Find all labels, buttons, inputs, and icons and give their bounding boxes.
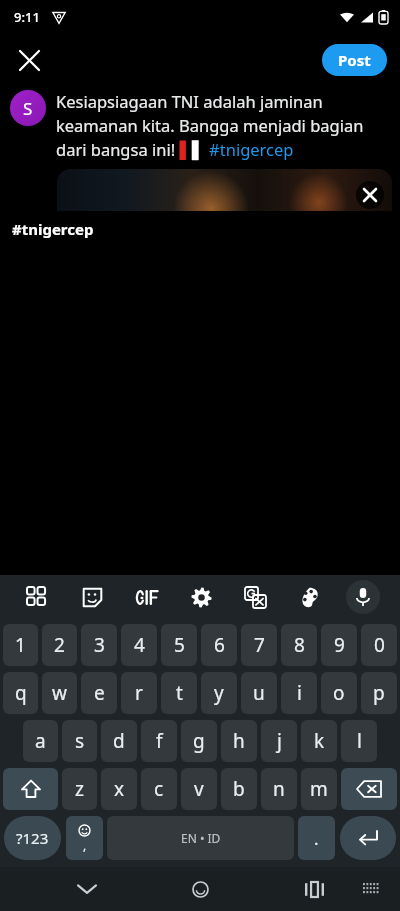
button[interactable]: Stickers xyxy=(65,579,120,615)
button[interactable]: Remove media xyxy=(356,181,384,209)
button[interactable]: Profile xyxy=(10,90,46,126)
button[interactable] xyxy=(57,169,392,211)
staticText: Post xyxy=(338,50,371,70)
staticText: m xyxy=(310,776,328,802)
button[interactable]: Shift xyxy=(3,768,58,810)
button[interactable]: Symbols xyxy=(10,579,65,615)
staticText: 7 xyxy=(254,632,265,658)
staticText: f xyxy=(156,728,163,754)
button[interactable]: o xyxy=(321,672,357,714)
button[interactable]: 6 xyxy=(201,624,237,666)
staticText: #tnigercep xyxy=(12,219,94,239)
button[interactable]: d xyxy=(101,720,137,762)
button[interactable]: w xyxy=(42,672,77,714)
button[interactable]: Home xyxy=(172,867,229,911)
button[interactable]: z xyxy=(62,768,97,810)
staticText: w xyxy=(52,680,67,706)
button[interactable]: 1 xyxy=(3,624,38,666)
button[interactable]: l xyxy=(341,720,377,762)
staticText: k xyxy=(314,728,325,754)
button[interactable]: 2 xyxy=(42,624,77,666)
button[interactable]: b xyxy=(221,768,257,810)
staticText: a xyxy=(35,728,46,754)
staticText: S xyxy=(23,97,33,120)
staticText: EN • ID xyxy=(181,830,221,846)
button[interactable]: Hide keyboard xyxy=(58,867,115,911)
staticText: y xyxy=(214,680,224,706)
button[interactable]: Emoji xyxy=(66,816,103,860)
staticText: x xyxy=(114,776,125,802)
button[interactable]: Post xyxy=(322,44,387,76)
button[interactable]: a xyxy=(23,720,58,762)
staticText: q xyxy=(15,680,27,706)
button[interactable]: v xyxy=(181,768,217,810)
button[interactable]: 9 xyxy=(321,624,357,666)
staticText: p xyxy=(373,680,385,706)
staticText: 1 xyxy=(15,632,26,658)
staticText: u xyxy=(253,680,265,706)
button[interactable]: 7 xyxy=(241,624,277,666)
staticText: 5 xyxy=(174,632,185,658)
staticText: 0 xyxy=(374,632,385,658)
staticText: 4 xyxy=(134,632,145,658)
button[interactable]: s xyxy=(62,720,97,762)
button[interactable]: q xyxy=(3,672,38,714)
staticText: . xyxy=(314,827,319,850)
staticText: s xyxy=(75,728,85,754)
staticText: d xyxy=(113,728,125,754)
button[interactable]: r xyxy=(121,672,157,714)
button[interactable]: t xyxy=(161,672,197,714)
button[interactable]: Space xyxy=(107,816,294,860)
button[interactable]: h xyxy=(221,720,257,762)
button[interactable]: 0 xyxy=(361,624,397,666)
staticText: 8 xyxy=(294,632,305,658)
staticText: 2 xyxy=(54,632,65,658)
button[interactable]: f xyxy=(141,720,177,762)
button[interactable]: Recents xyxy=(286,867,343,911)
button[interactable]: x xyxy=(101,768,137,810)
button[interactable]: . xyxy=(298,816,335,860)
staticText: Kesiapsiagaan TNI adalah jaminan keamana… xyxy=(56,90,388,161)
staticText: j xyxy=(277,728,282,754)
staticText: 3 xyxy=(94,632,105,658)
button[interactable]: 3 xyxy=(81,624,117,666)
button[interactable]: m xyxy=(301,768,337,810)
staticText: ?123 xyxy=(16,828,49,848)
button[interactable]: e xyxy=(81,672,117,714)
staticText: r xyxy=(135,680,143,706)
staticText: 6 xyxy=(214,632,225,658)
button[interactable]: y xyxy=(201,672,237,714)
button[interactable]: 4 xyxy=(121,624,157,666)
button[interactable]: p xyxy=(361,672,397,714)
button[interactable]: Close xyxy=(8,39,50,81)
button[interactable]: Voice input xyxy=(346,580,380,614)
button[interactable]: Settings xyxy=(174,579,228,615)
button[interactable]: c xyxy=(141,768,177,810)
button[interactable]: 5 xyxy=(161,624,197,666)
staticText: c xyxy=(154,776,164,802)
staticText: b xyxy=(233,776,245,802)
staticText: t xyxy=(176,680,183,706)
staticText: l xyxy=(357,728,362,754)
button[interactable]: 8 xyxy=(281,624,317,666)
button[interactable]: Backspace xyxy=(341,768,397,810)
button[interactable]: i xyxy=(281,672,317,714)
staticText: i xyxy=(297,680,302,706)
button[interactable]: n xyxy=(261,768,297,810)
staticText: e xyxy=(94,680,105,706)
staticText: z xyxy=(75,776,84,802)
button[interactable]: Change keyboard xyxy=(343,867,400,911)
button[interactable]: u xyxy=(241,672,277,714)
staticText: , xyxy=(83,837,87,853)
staticText: g xyxy=(193,728,205,754)
staticText: o xyxy=(333,680,345,706)
button[interactable]: g xyxy=(181,720,217,762)
button[interactable]: GIF xyxy=(120,579,174,615)
button[interactable]: Enter xyxy=(340,816,396,860)
button[interactable]: k xyxy=(301,720,337,762)
button[interactable]: Translate xyxy=(228,579,282,615)
button[interactable]: j xyxy=(261,720,297,762)
button[interactable]: #tnigercep xyxy=(0,211,400,247)
button[interactable]: Theme xyxy=(282,579,336,615)
button[interactable]: ?123 xyxy=(4,816,61,860)
